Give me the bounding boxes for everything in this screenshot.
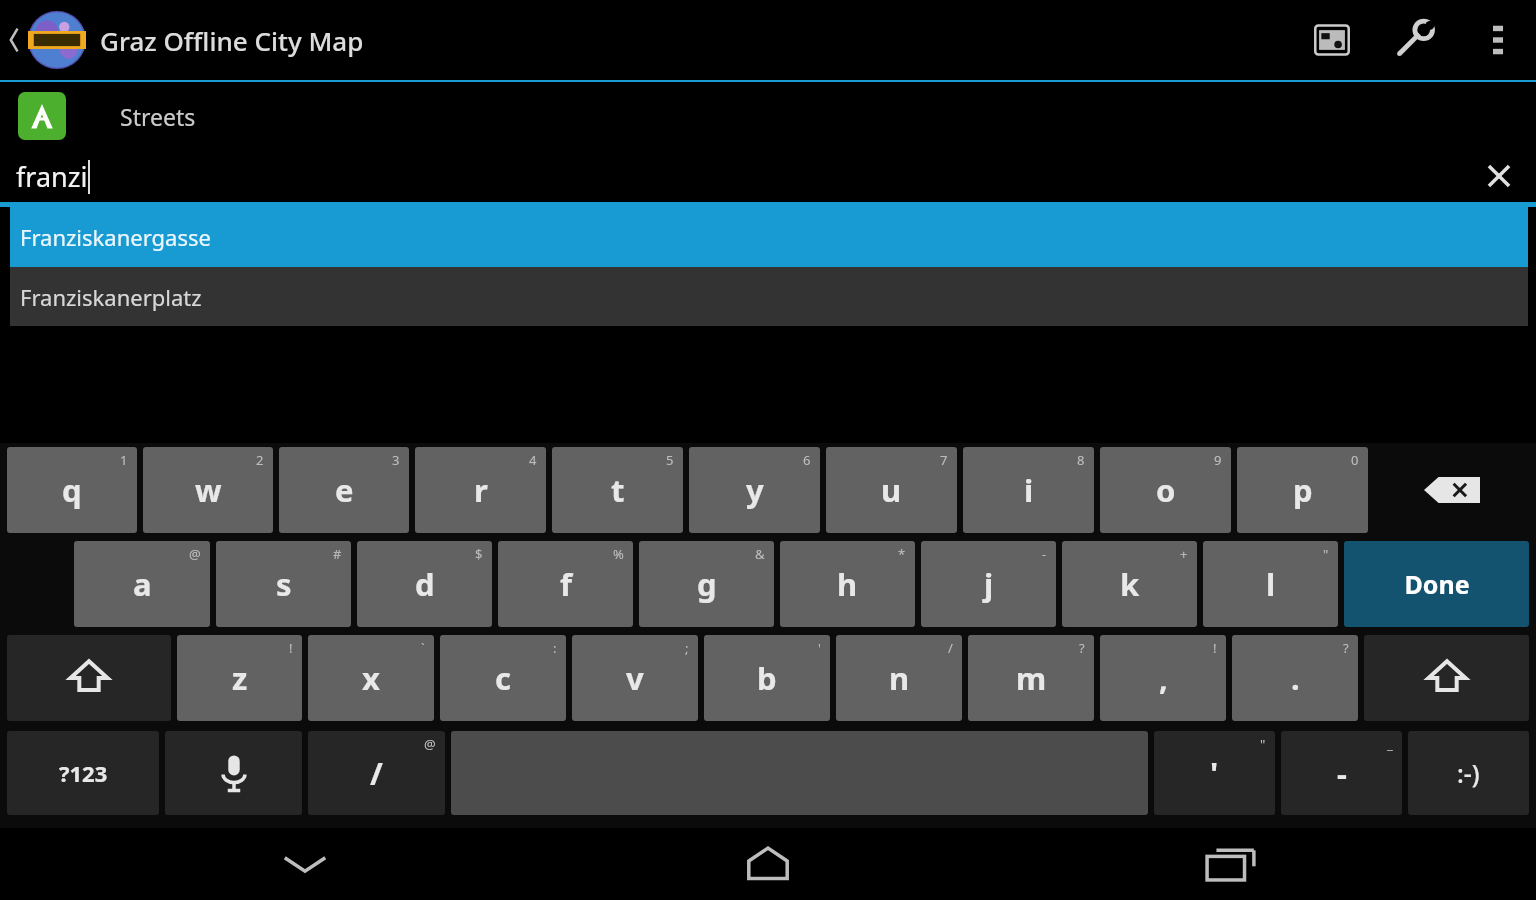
button[interactable]: Voice input [165,731,302,815]
staticText: 1 [120,451,128,469]
button[interactable]: 1 [7,447,137,533]
staticText: j [984,563,994,605]
button[interactable]: 4 [415,447,546,533]
staticText: # [333,545,342,563]
staticText: ! [289,639,293,657]
button[interactable]: & [639,541,774,627]
button[interactable]: ? [1232,635,1358,721]
staticText: / [370,752,383,794]
button[interactable]: ; [572,635,698,721]
button[interactable]: _ [1281,731,1402,815]
button[interactable]: Settings [1368,0,1460,80]
staticText: " [1260,735,1266,753]
staticText: z [232,657,248,699]
staticText: , [1159,657,1168,699]
staticText: % [613,545,624,563]
button[interactable]: Recent apps [1171,828,1291,900]
button[interactable]: Hide keyboard [245,828,365,900]
button[interactable]: ` [308,635,434,721]
staticText: 3 [392,451,400,469]
button[interactable]: - [921,541,1056,627]
button[interactable]: 7 [826,447,957,533]
staticText: Streets [120,101,196,132]
staticText: & [755,545,765,563]
button[interactable]: Emoji [1408,731,1529,815]
staticText: franzi [16,158,88,195]
staticText: Done [1404,567,1470,601]
staticText: Graz Offline City Map [100,23,364,58]
staticText: ' [1210,752,1219,794]
button[interactable]: Franziskanerplatz [10,267,1528,326]
staticText: + [1180,545,1188,563]
staticText: / [948,639,953,657]
staticText: 9 [1214,451,1222,469]
button[interactable]: % [498,541,633,627]
button[interactable]: More options [1460,0,1536,80]
staticText: 7 [940,451,948,469]
button[interactable]: 3 [279,447,409,533]
staticText: m [1016,657,1047,699]
staticText: p [1293,469,1313,511]
staticText: e [335,469,354,511]
staticText: - [1337,752,1347,794]
staticText: g [697,563,717,605]
button[interactable]: 9 [1100,447,1231,533]
button[interactable]: 2 [143,447,273,533]
button[interactable]: ?123 [7,731,159,815]
button[interactable]: ? [968,635,1094,721]
button[interactable]: " [1154,731,1275,815]
button[interactable]: Franziskanergasse [10,207,1528,267]
staticText: b [757,657,777,699]
button[interactable]: Shift [7,635,171,721]
staticText: t [611,469,625,511]
staticText: " [1323,545,1329,563]
button[interactable]: $ [357,541,492,627]
button[interactable]: 5 [552,447,683,533]
button[interactable]: + [1062,541,1197,627]
button[interactable]: * [780,541,915,627]
staticText: l [1266,563,1276,605]
staticText: ; [685,639,689,657]
staticText: $ [475,545,483,563]
staticText: i [1024,469,1034,511]
staticText: r [474,469,488,511]
staticText: : [553,639,557,657]
staticText: n [889,657,910,699]
button[interactable]: / [836,635,962,721]
button[interactable]: : [440,635,566,721]
button[interactable]: Streets [0,82,1536,150]
staticText: Franziskanergasse [20,222,211,252]
staticText: v [626,657,644,699]
button[interactable]: " [1203,541,1338,627]
staticText: 0 [1351,451,1359,469]
button[interactable]: Backspace [1374,447,1529,533]
button[interactable]: 6 [689,447,820,533]
button[interactable]: ! [177,635,302,721]
staticText: h [837,563,858,605]
button[interactable]: Done [1344,541,1529,627]
staticText: q [62,469,82,511]
button[interactable]: 8 [963,447,1094,533]
staticText: y [746,469,764,511]
button[interactable]: Map search [1296,0,1368,80]
staticText: x [362,657,380,699]
button[interactable]: Clear text [1462,150,1536,202]
button[interactable]: Home [708,828,828,900]
button[interactable]: ' [704,635,830,721]
button[interactable]: @ [74,541,210,627]
staticText: a [133,563,152,605]
button[interactable]: # [216,541,351,627]
button[interactable]: Shift [1364,635,1529,721]
button[interactable]: ! [1100,635,1226,721]
button[interactable]: 0 [1237,447,1368,533]
staticText: 4 [529,451,537,469]
staticText: ? [1343,639,1349,657]
staticText: s [276,563,292,605]
staticText: d [415,563,435,605]
staticText: 2 [256,451,264,469]
staticText: k [1120,563,1140,605]
staticText: w [195,469,222,511]
button[interactable]: @ [308,731,445,815]
staticText: 5 [666,451,674,469]
